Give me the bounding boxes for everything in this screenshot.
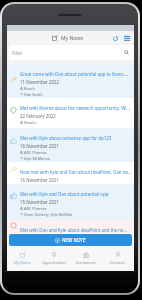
staticText: Filter <box>12 50 23 56</box>
staticText: Bosch <box>24 86 35 91</box>
staticText: Institutions <box>76 260 96 265</box>
button[interactable]: NEW NOTE <box>9 234 132 246</box>
staticText: 16 November 2021 <box>20 177 60 183</box>
staticText: My Notes <box>61 35 84 42</box>
button[interactable]: Met with Kyle and Dan about potential op… <box>7 184 134 220</box>
staticText: 11 November 2022 <box>20 79 60 85</box>
staticText: Dan Smith <box>24 92 43 97</box>
staticText: Contacts <box>110 260 126 265</box>
staticText: Kyle McMahon <box>24 156 51 161</box>
button[interactable]: Now met with Kyle and Dan about ideaPoin… <box>7 162 134 184</box>
staticText: Met with Kyle about outsense app for dp1… <box>20 135 112 141</box>
button[interactable]: Institutions <box>70 247 102 271</box>
button[interactable]: Refresh <box>110 33 120 43</box>
button[interactable]: Filter <box>9 45 134 60</box>
button[interactable]: Great come with Dan about potential app … <box>7 64 134 98</box>
staticText: Met with Ronnie about the newtech opport… <box>20 105 130 111</box>
staticText: Met with Kyle and Dan about potential op… <box>20 191 109 197</box>
staticText: Dean Doherty, Kyle McMah <box>24 212 73 217</box>
button[interactable]: My Notes <box>7 247 38 271</box>
staticText: Great come with Dan about potential app … <box>20 71 129 77</box>
staticText: ABC Pharma <box>24 150 47 155</box>
staticText: NewCo <box>24 120 37 125</box>
button[interactable]: Opportunities <box>38 247 70 271</box>
staticText: Met with Dan and Kyle about ideaPoint an… <box>20 227 128 233</box>
button[interactable]: Met with Kyle about outsense app for dp1… <box>7 128 134 162</box>
button[interactable]: Met with Ronnie about the newtech opport… <box>7 98 134 128</box>
button[interactable]: Menu <box>122 33 132 43</box>
staticText: ABC Pharma <box>24 206 47 211</box>
staticText: 16 November 2021 <box>20 143 60 149</box>
button[interactable]: Contacts <box>102 247 134 271</box>
staticText: NEW NOTE <box>62 237 86 243</box>
staticText: My Notes <box>14 260 31 265</box>
staticText: 22 February 2022 <box>20 113 56 119</box>
staticText: Now met with Kyle and Dan about ideaPoin… <box>20 169 132 175</box>
button[interactable]: Met with Dan and Kyle about ideaPoint an… <box>7 220 134 233</box>
staticText: 15 November 2021 <box>20 199 60 205</box>
staticText: Opportunities <box>42 260 67 265</box>
